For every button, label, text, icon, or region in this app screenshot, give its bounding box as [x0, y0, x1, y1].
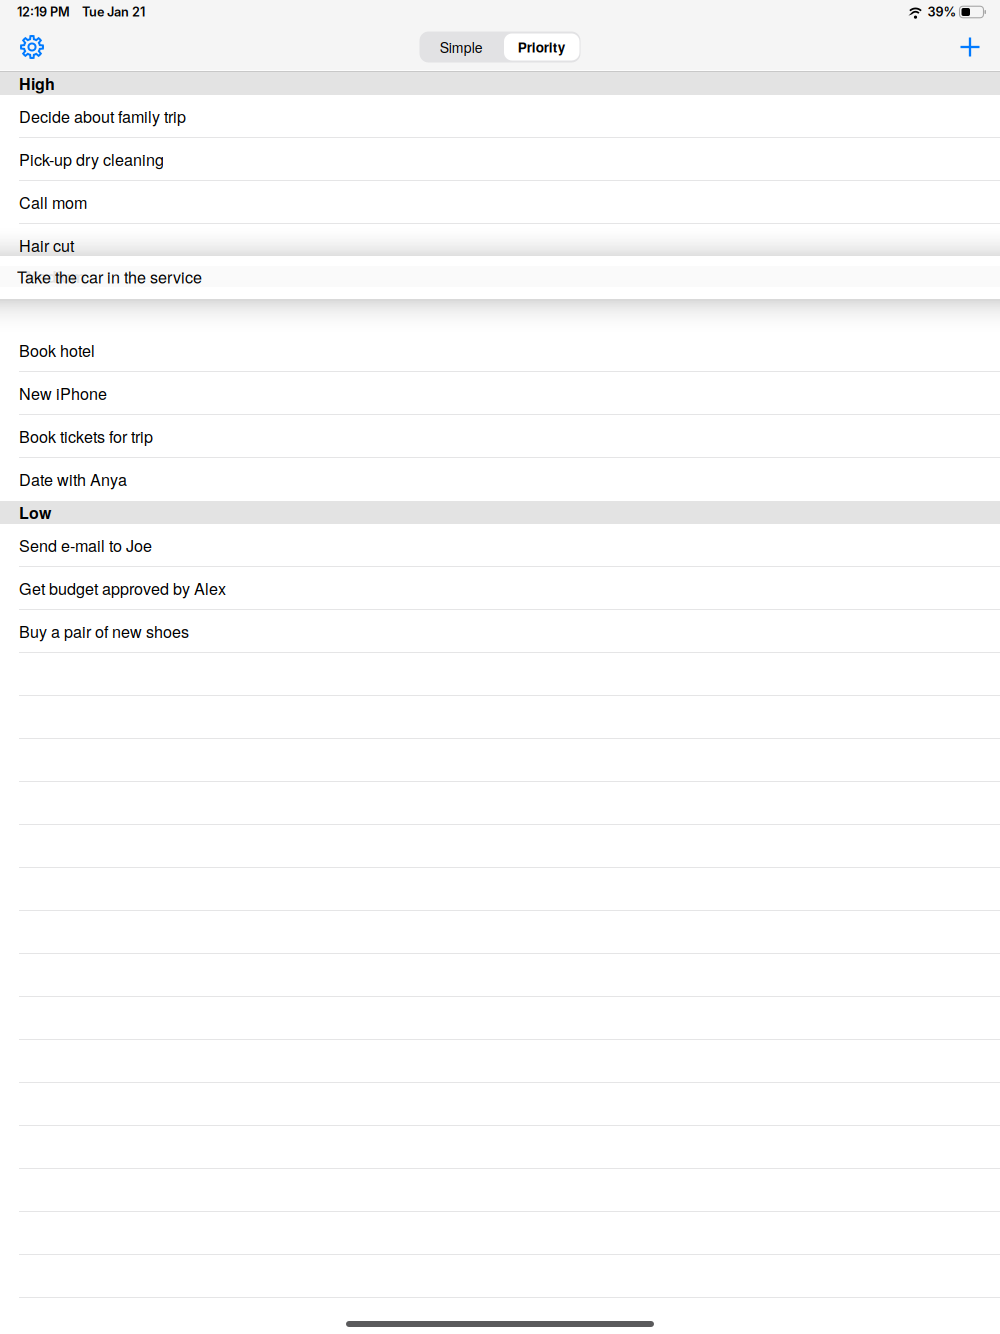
staticText: New iPhone	[19, 381, 107, 404]
staticText: Pick-up dry cleaning	[19, 147, 164, 170]
button[interactable]: Priority	[503, 31, 580, 62]
button[interactable]: Simple	[419, 31, 503, 62]
staticText: 12:19 PM	[17, 4, 70, 20]
button[interactable]: Decide about family trip	[0, 95, 1000, 138]
button[interactable]: Book tickets for trip	[0, 415, 1000, 458]
button[interactable]: Date with Anya	[0, 458, 1000, 501]
staticText: Book hotel	[19, 338, 95, 361]
button[interactable]: Get budget approved by Alex	[0, 567, 1000, 610]
staticText: Take the car in the service	[17, 265, 202, 288]
staticText: Book tickets for trip	[19, 424, 153, 447]
button[interactable]: Hair cut	[0, 224, 1000, 267]
staticText: Decide about family trip	[19, 104, 186, 127]
staticText: Medium	[25, 265, 85, 288]
staticText: Buy a pair of new shoes	[19, 619, 189, 642]
staticText: Simple	[440, 37, 483, 57]
button[interactable]: Settings	[10, 25, 54, 69]
staticText: Medium	[19, 267, 79, 290]
staticText: Hair cut	[19, 233, 74, 256]
staticText: High	[19, 72, 55, 95]
staticText: Call mom	[19, 190, 87, 213]
button[interactable]: Buy a pair of new shoes	[0, 610, 1000, 653]
staticText: Date with Anya	[19, 467, 127, 490]
staticText: Priority	[518, 37, 566, 57]
staticText: Get budget approved by Alex	[19, 576, 226, 599]
staticText: Low	[19, 501, 51, 524]
button[interactable]: Send e-mail to Joe	[0, 524, 1000, 567]
button[interactable]: Add task	[948, 25, 992, 69]
staticText: 39%	[927, 4, 956, 20]
button[interactable]: Book hotel	[0, 329, 1000, 372]
button[interactable]: New iPhone	[0, 372, 1000, 415]
staticText: Send e-mail to Joe	[19, 533, 152, 556]
button[interactable]: Call mom	[0, 181, 1000, 224]
button[interactable]: Medium	[0, 266, 1000, 287]
staticText: Tue Jan 21	[82, 4, 145, 20]
button[interactable]: Pick-up dry cleaning	[0, 138, 1000, 181]
